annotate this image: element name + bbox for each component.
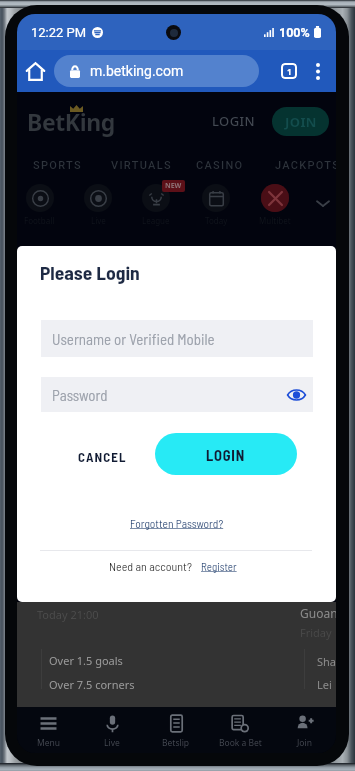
staticText: LOGIN: [212, 112, 256, 130]
button[interactable]: League: [135, 184, 177, 226]
staticText: Over 1.5 goals: [49, 653, 123, 668]
staticText: Football: [24, 215, 55, 226]
staticText: 12:22 PM: [31, 25, 87, 40]
staticText: Join: [297, 737, 312, 749]
button[interactable]: JACKPOTS: [275, 150, 336, 180]
button[interactable]: SPORTS: [33, 150, 107, 180]
staticText: Sha: [317, 654, 336, 669]
button[interactable]: LOGIN: [206, 106, 262, 136]
staticText: VIRTUALS: [111, 159, 172, 172]
button[interactable]: Live: [77, 184, 119, 226]
staticText: Forgotten Password?: [130, 516, 224, 530]
button[interactable]: CASINO: [196, 150, 270, 180]
staticText: Please Login: [40, 260, 140, 283]
staticText: 1: [287, 66, 292, 77]
button[interactable]: Tabs: [276, 58, 302, 84]
staticText: Multibet: [259, 215, 291, 226]
staticText: Live: [104, 737, 120, 749]
staticText: NEW: [165, 181, 182, 191]
staticText: Need an account?: [109, 559, 192, 573]
staticText: Password: [52, 386, 108, 404]
button[interactable]: JOIN: [272, 107, 329, 136]
button[interactable]: Expand: [310, 190, 336, 216]
staticText: BetKing: [27, 106, 115, 137]
staticText: CANCEL: [78, 449, 127, 465]
button[interactable]: Live: [80, 707, 144, 753]
button[interactable]: Password: [41, 377, 313, 412]
staticText: Today 21:00: [37, 607, 99, 622]
button[interactable]: Join: [272, 707, 336, 753]
staticText: CASINO: [196, 159, 244, 172]
button[interactable]: Forgotten Password?: [122, 511, 232, 535]
button[interactable]: Home: [20, 56, 50, 86]
button[interactable]: Menu: [17, 707, 80, 753]
button[interactable]: Book a Bet: [208, 707, 272, 753]
staticText: Today: [205, 215, 228, 226]
staticText: JACKPOTS: [275, 159, 336, 172]
button[interactable]: Betslip: [144, 707, 208, 753]
staticText: Username or Verified Mobile: [52, 330, 215, 348]
button[interactable]: VIRTUALS: [111, 150, 185, 180]
button[interactable]: More options: [305, 58, 331, 84]
staticText: Register: [201, 560, 237, 573]
staticText: Friday: [300, 625, 332, 640]
button[interactable]: Today: [195, 184, 237, 226]
button[interactable]: CANCEL: [66, 439, 139, 475]
staticText: Lei: [317, 677, 332, 692]
staticText: SPORTS: [33, 159, 82, 172]
button[interactable]: Username or Verified Mobile: [41, 320, 313, 357]
button[interactable]: Football: [18, 184, 60, 226]
staticText: Book a Bet: [219, 737, 262, 749]
staticText: Betslip: [162, 737, 190, 749]
staticText: Live: [91, 215, 106, 226]
staticText: LOGIN: [206, 446, 246, 463]
staticText: League: [142, 215, 170, 226]
button[interactable]: Register: [201, 560, 237, 573]
button[interactable]: LOGIN: [155, 433, 297, 475]
staticText: 100%: [279, 25, 310, 40]
staticText: Over 7.5 corners: [49, 677, 135, 692]
staticText: Menu: [37, 737, 61, 749]
staticText: JOIN: [285, 113, 317, 131]
staticText: Guoan: [300, 605, 336, 621]
staticText: m.betking.com: [90, 63, 184, 79]
button[interactable]: m.betking.com: [54, 55, 259, 87]
button[interactable]: Multibet: [254, 184, 296, 226]
